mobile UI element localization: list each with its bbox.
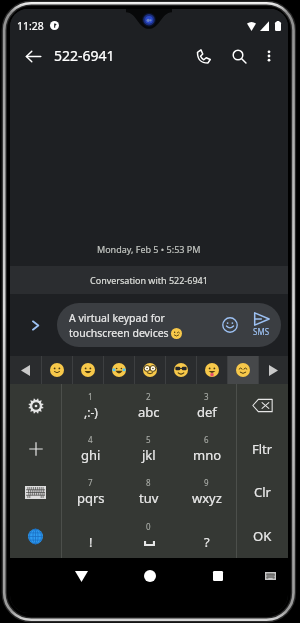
staticText: Fltr xyxy=(252,440,273,458)
button[interactable]: Insert emoji xyxy=(216,311,244,339)
staticText: OK xyxy=(253,527,272,545)
button[interactable]: More options xyxy=(256,43,282,69)
button[interactable]: Language xyxy=(10,514,61,558)
button[interactable]: 5 jkl xyxy=(120,427,178,470)
staticText: 1 xyxy=(88,391,93,402)
button[interactable]: Emoji cool xyxy=(166,356,196,384)
staticText: 2 xyxy=(146,391,151,402)
staticText: jkl xyxy=(142,446,156,464)
staticText: touchscreen devices xyxy=(69,326,169,340)
button[interactable]: 8 tuv xyxy=(120,470,178,514)
button[interactable]: Emoji tongue xyxy=(197,356,227,384)
button[interactable]: Backspace xyxy=(237,384,288,427)
staticText: 5 xyxy=(146,434,151,445)
staticText: 4 xyxy=(88,434,93,445)
button[interactable]: 3 def xyxy=(178,384,236,427)
button[interactable]: Add xyxy=(10,427,61,470)
button[interactable]: OK xyxy=(237,514,288,558)
button[interactable]: Back xyxy=(20,43,46,69)
button[interactable]: ? xyxy=(178,514,236,558)
staticText: 3 xyxy=(204,391,209,402)
button[interactable]: 4 ghi xyxy=(62,427,120,470)
button[interactable]: 6 mno xyxy=(178,427,236,470)
button[interactable]: Back xyxy=(65,560,97,592)
button[interactable]: Emoji blush xyxy=(228,356,258,384)
button[interactable]: Show more options xyxy=(24,314,46,336)
button[interactable]: Home xyxy=(134,560,166,592)
staticText: SMS xyxy=(253,326,270,337)
button[interactable]: Settings xyxy=(10,384,61,427)
staticText: 9 xyxy=(204,477,209,488)
staticText: abc xyxy=(138,403,160,421)
staticText: A virtual keypad for xyxy=(69,311,165,325)
button[interactable]: Change keyboard xyxy=(254,560,286,592)
button[interactable]: Previous emoji page xyxy=(10,356,41,384)
staticText: wxyz xyxy=(192,489,222,507)
button[interactable]: 1 ,:-) xyxy=(62,384,120,427)
staticText: ghi xyxy=(81,446,101,464)
staticText: 6 xyxy=(204,434,209,445)
button[interactable]: Emoji grin xyxy=(73,356,103,384)
button[interactable]: Emoji nerd xyxy=(135,356,165,384)
button[interactable]: A virtual keypad for xyxy=(57,303,281,347)
staticText: ? xyxy=(204,533,210,551)
button[interactable]: Fltr xyxy=(237,427,288,470)
button[interactable]: 0 ␣ xyxy=(120,514,178,558)
staticText: tuv xyxy=(139,489,159,507)
staticText: def xyxy=(197,403,217,421)
button[interactable]: 2 abc xyxy=(120,384,178,427)
staticText: Monday, Feb 5 • 5:53 PM xyxy=(97,243,201,255)
staticText: ! xyxy=(89,533,93,551)
staticText: Clr xyxy=(254,483,271,501)
button[interactable]: Emoji rofl xyxy=(104,356,134,384)
button[interactable]: Next emoji page xyxy=(259,356,288,384)
button[interactable]: Recent apps xyxy=(202,560,234,592)
staticText: 8 xyxy=(146,477,151,488)
button[interactable]: Search xyxy=(224,41,254,71)
button[interactable]: 9 wxyz xyxy=(178,470,236,514)
button[interactable]: ! xyxy=(62,514,120,558)
staticText: 0 xyxy=(146,521,151,532)
staticText: pqrs xyxy=(77,489,105,507)
staticText: ,:-) xyxy=(84,404,98,420)
staticText: Conversation with 522-6941 xyxy=(90,274,208,286)
staticText: 7 xyxy=(88,477,93,488)
staticText: 11:28 xyxy=(17,19,44,33)
button[interactable]: Call xyxy=(188,41,218,71)
button[interactable]: 7 pqrs xyxy=(62,470,120,514)
button[interactable]: Emoji slight xyxy=(42,356,72,384)
staticText: 522-6941 xyxy=(54,46,115,65)
staticText: mno xyxy=(193,446,222,464)
button[interactable]: Clr xyxy=(237,470,288,514)
button[interactable]: Send SMS xyxy=(245,307,277,343)
button[interactable]: Switch keyboard xyxy=(10,470,61,514)
